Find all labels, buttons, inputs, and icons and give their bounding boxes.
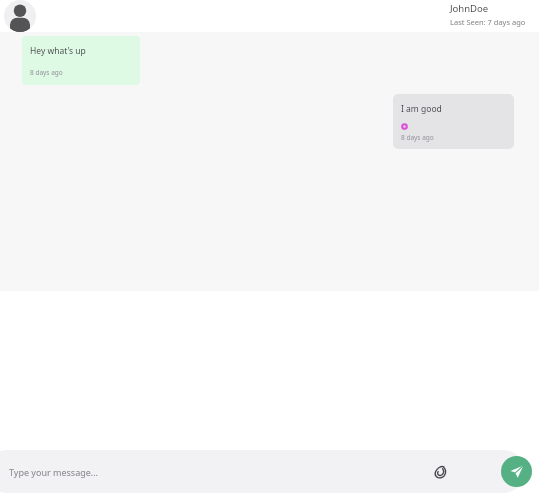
button[interactable]: Hey what's up: [22, 36, 140, 85]
other: Message status: [401, 123, 408, 130]
button[interactable]: Profile photo: [4, 0, 36, 32]
staticText: Last Seen: 7 days ago: [450, 17, 526, 27]
button[interactable]: Attach file: [430, 461, 452, 483]
staticText: 8 days ago: [401, 133, 434, 142]
staticText: I am good: [401, 103, 442, 115]
staticText: JohnDoe: [450, 2, 489, 15]
button[interactable]: Type your message...: [0, 450, 525, 493]
button[interactable]: Send message: [501, 456, 532, 487]
button[interactable]: I am good: [393, 94, 514, 149]
staticText: Type your message...: [9, 466, 99, 478]
staticText: 8 days ago: [30, 68, 63, 77]
button[interactable]: JohnDoe: [450, 2, 526, 27]
staticText: Hey what's up: [30, 45, 86, 57]
